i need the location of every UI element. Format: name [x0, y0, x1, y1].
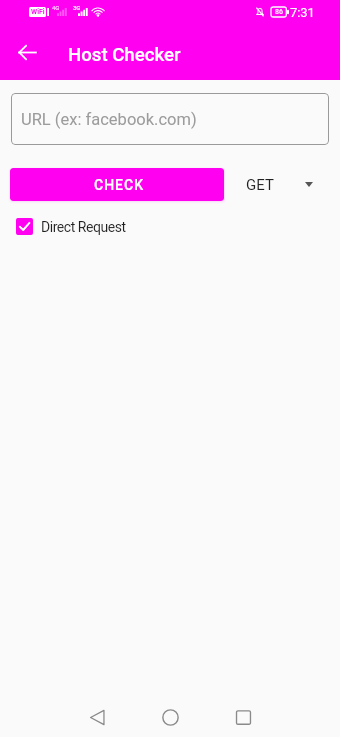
- staticText: WiFi: [31, 8, 45, 16]
- staticText: 86: [275, 8, 283, 16]
- staticText: 7:31: [290, 5, 315, 20]
- staticText: Direct Request: [41, 219, 126, 235]
- button[interactable]: Home: [146, 697, 194, 737]
- staticText: URL (ex: facebook.com): [21, 110, 197, 129]
- button[interactable]: URL (ex: facebook.com): [11, 93, 329, 145]
- button[interactable]: Navigate up: [5, 30, 49, 74]
- button[interactable]: Direct Request: [16, 218, 126, 235]
- staticText: CHECK: [94, 177, 144, 193]
- staticText: 3G: [73, 4, 81, 11]
- button[interactable]: CHECK: [10, 168, 224, 201]
- staticText: GET: [246, 176, 274, 194]
- button[interactable]: Recents: [219, 697, 267, 737]
- button[interactable]: Back: [73, 697, 121, 737]
- staticText: Host Checker: [68, 44, 181, 66]
- button[interactable]: GET: [246, 168, 313, 201]
- staticText: 4G: [52, 4, 60, 11]
